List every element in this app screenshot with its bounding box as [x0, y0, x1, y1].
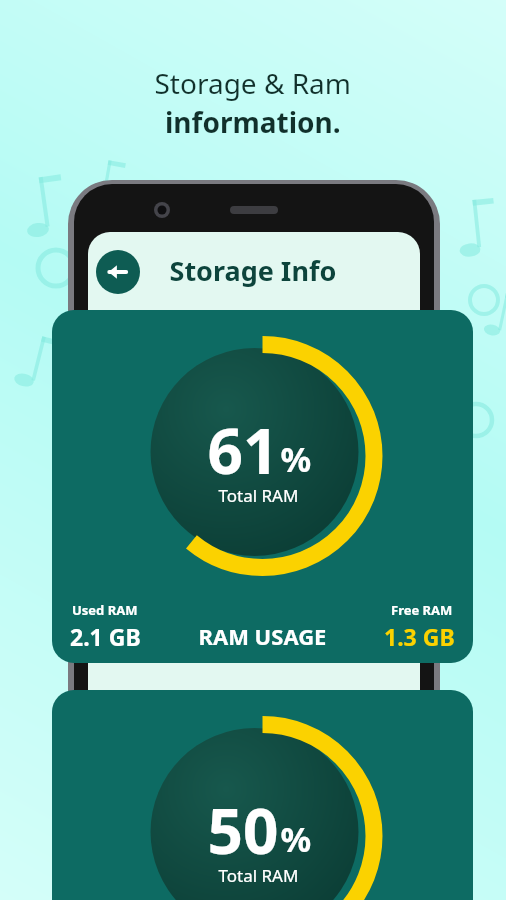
button[interactable]: Storage usage 50 percent — [52, 690, 473, 900]
button[interactable]: Back — [96, 250, 140, 294]
button[interactable]: RAM usage 61 percent — [52, 310, 473, 663]
